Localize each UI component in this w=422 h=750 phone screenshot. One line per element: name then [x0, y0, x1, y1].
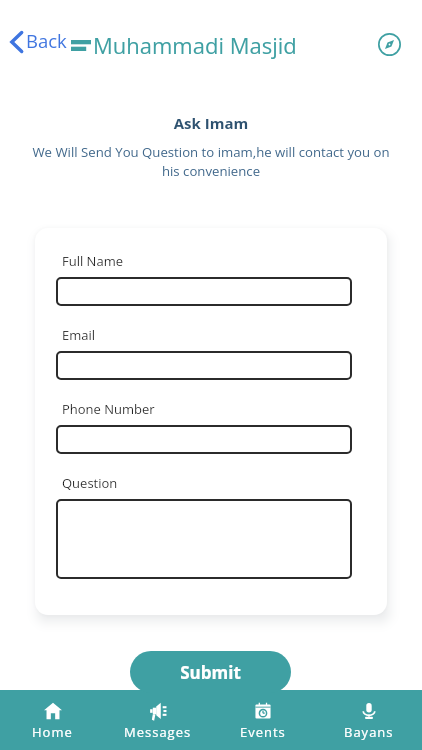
staticText: Messages [124, 723, 192, 741]
button[interactable]: Bayans [316, 690, 422, 750]
button[interactable] [56, 277, 352, 306]
staticText: Email [62, 326, 96, 344]
button[interactable] [56, 499, 352, 579]
staticText: Phone Number [62, 400, 155, 418]
staticText: Ask Imam [0, 113, 422, 133]
staticText: Question [62, 474, 118, 492]
button[interactable]: Events [210, 690, 316, 750]
staticText: Bayans [344, 723, 394, 741]
staticText: Submit [180, 661, 241, 684]
button[interactable]: Messages [105, 690, 210, 750]
staticText: Home [32, 723, 73, 741]
button[interactable]: Home [0, 690, 105, 750]
button[interactable] [56, 351, 352, 380]
staticText: Muhammadi Masjid [93, 30, 297, 60]
staticText: Events [240, 723, 286, 741]
staticText: We Will Send You Question to imam,he wil… [28, 143, 394, 180]
button[interactable]: Explore [378, 33, 401, 56]
button[interactable]: Back [4, 27, 73, 56]
staticText: Back [26, 28, 67, 53]
staticText: Full Name [62, 252, 123, 270]
button[interactable] [56, 425, 352, 454]
button[interactable]: Submit [130, 651, 291, 693]
